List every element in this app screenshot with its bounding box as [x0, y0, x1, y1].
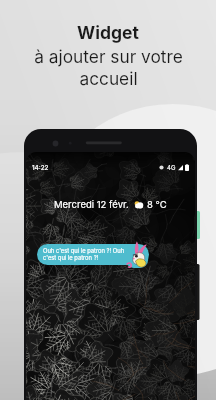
staticText: 8 °C — [147, 199, 167, 210]
staticText: Mercredi 12 févr. — [54, 199, 129, 210]
button[interactable]: Avatar Lapin — [126, 240, 152, 270]
staticText: à ajouter sur votre accueil — [34, 46, 183, 89]
staticText: Widget — [77, 22, 139, 43]
staticText: 4G — [167, 164, 176, 171]
staticText: Ouh c'est qui le patron ?! Ouh c'est qui… — [43, 247, 125, 262]
button[interactable]: Mercredi 12 févr. — [26, 199, 195, 210]
staticText: 14:22 — [32, 164, 49, 172]
button[interactable]: Ouh c'est qui le patron ?! Ouh c'est qui… — [37, 244, 149, 265]
other: Météo — [134, 201, 144, 209]
